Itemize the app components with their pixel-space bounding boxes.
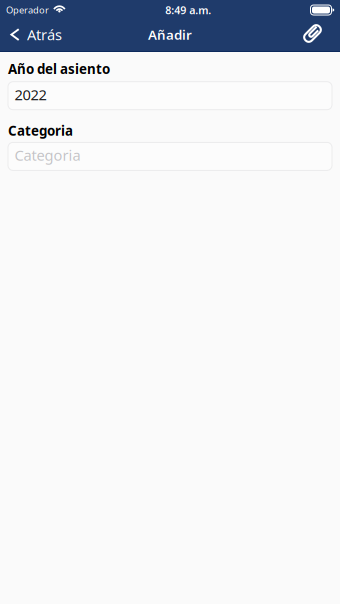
- staticText: Atrás: [27, 25, 62, 44]
- button[interactable]: Adjuntar archivo: [301, 20, 340, 52]
- staticText: Año del asiento: [8, 60, 110, 78]
- button[interactable]: 2022: [8, 82, 332, 110]
- staticText: 8:49 a.m.: [165, 3, 211, 17]
- staticText: Operador: [6, 4, 49, 16]
- button[interactable]: Atrás: [0, 20, 70, 52]
- staticText: Categoria: [8, 122, 73, 139]
- staticText: Añadir: [148, 26, 192, 43]
- staticText: Categoria: [14, 145, 80, 165]
- button[interactable]: Categoria: [8, 142, 332, 170]
- staticText: 2022: [14, 85, 46, 104]
